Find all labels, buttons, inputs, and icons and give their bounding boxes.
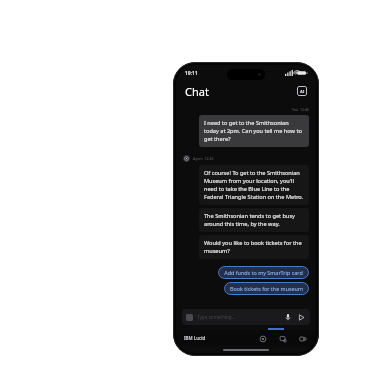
button[interactable]: Dashboard <box>257 333 268 344</box>
button[interactable]: Voice input <box>283 312 293 322</box>
staticText: AI <box>300 89 305 94</box>
staticText: You 12:46 <box>292 107 309 112</box>
staticText: Would you like to book tickets for the m… <box>204 239 304 255</box>
staticText: The Smithsonian tends to get busy around… <box>204 212 304 228</box>
staticText: Of course! To get to the Smithsonian Mus… <box>204 169 304 201</box>
button[interactable]: Of course! To get to the Smithsonian Mus… <box>199 165 309 205</box>
staticText: 19:11 <box>185 70 198 77</box>
staticText: Chat <box>185 84 209 99</box>
button[interactable]: The Smithsonian tends to get busy around… <box>199 208 309 232</box>
staticText: Book tickets for the museum <box>230 285 303 292</box>
button[interactable]: Chat <box>277 333 288 344</box>
button[interactable]: Devices <box>297 333 308 344</box>
staticText: Type something... <box>197 314 236 320</box>
button[interactable]: Add funds to my SmarTrip card <box>218 266 309 279</box>
staticText: Add funds to my SmarTrip card <box>224 269 303 276</box>
button[interactable]: I need to get to the Smithsonian today a… <box>199 115 309 147</box>
button[interactable]: Attach <box>186 314 193 321</box>
button[interactable]: Would you like to book tickets for the m… <box>199 235 309 259</box>
button[interactable]: AI assistant <box>297 86 307 96</box>
button[interactable]: Book tickets for the museum <box>224 282 309 295</box>
staticText: I need to get to the Smithsonian today a… <box>204 119 304 143</box>
button[interactable]: Send <box>296 312 306 322</box>
staticText: Agent 12:46 <box>193 156 214 161</box>
staticText: IBM Lucid <box>184 335 206 341</box>
